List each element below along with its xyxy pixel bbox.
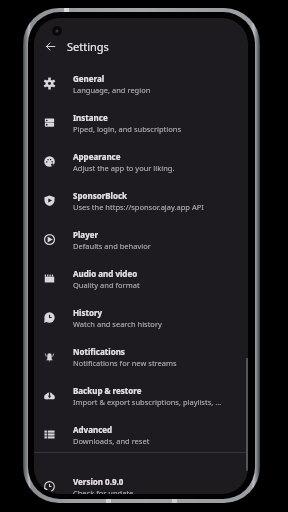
button[interactable]: General <box>34 64 248 103</box>
button[interactable]: Appearance <box>34 142 248 181</box>
button[interactable]: Notifications <box>34 337 248 376</box>
staticText: General <box>73 73 105 84</box>
button[interactable]: Backup & restore <box>34 376 248 415</box>
staticText: Backup & restore <box>73 385 142 396</box>
staticText: Adjust the app to your liking. <box>73 163 175 173</box>
button[interactable]: SponsorBlock <box>34 181 248 220</box>
staticText: Notifications for new streams <box>73 358 177 368</box>
staticText: Advanced <box>73 424 113 435</box>
staticText: Downloads, and reset <box>73 436 150 446</box>
button[interactable]: Version 0.9.0 <box>34 467 248 494</box>
staticText: Audio and video <box>73 268 138 279</box>
staticText: Version 0.9.0 <box>73 476 124 487</box>
staticText: Instance <box>73 112 108 123</box>
staticText: Appearance <box>73 151 121 162</box>
button[interactable]: Back <box>40 36 60 56</box>
staticText: Import & export subscriptions, playlists… <box>73 397 222 407</box>
staticText: Check for update <box>73 488 134 494</box>
staticText: Language, and region <box>73 85 151 95</box>
staticText: Player <box>73 229 99 240</box>
staticText: Settings <box>67 39 109 54</box>
staticText: Quality and format <box>73 280 140 290</box>
staticText: Piped, login, and subscriptions <box>73 124 181 134</box>
button[interactable]: History <box>34 298 248 337</box>
button[interactable]: Instance <box>34 103 248 142</box>
button[interactable]: Audio and video <box>34 259 248 298</box>
staticText: Notifications <box>73 346 125 357</box>
button[interactable]: Advanced <box>34 415 248 454</box>
staticText: Uses the https://sponsor.ajay.app API <box>73 202 204 212</box>
button[interactable]: Player <box>34 220 248 259</box>
staticText: Defaults and behavior <box>73 241 151 251</box>
staticText: Watch and search history <box>73 319 162 329</box>
staticText: SponsorBlock <box>73 190 128 201</box>
staticText: History <box>73 307 103 318</box>
